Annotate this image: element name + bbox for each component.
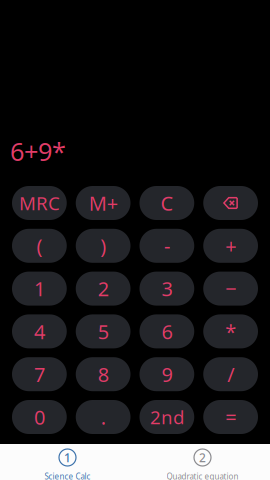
staticText: - xyxy=(164,232,170,259)
staticText: M+ xyxy=(89,190,118,216)
staticText: 1 xyxy=(34,275,45,302)
staticText: 2nd xyxy=(150,405,184,429)
staticText: 2 xyxy=(199,449,206,465)
button[interactable]: ) xyxy=(76,229,131,263)
staticText: 5 xyxy=(98,318,109,345)
button[interactable]: 6 xyxy=(139,314,194,348)
button[interactable]: 1 xyxy=(12,272,67,306)
staticText: 6+9* xyxy=(10,134,66,168)
button[interactable]: 5 xyxy=(76,314,131,348)
staticText: = xyxy=(225,404,236,430)
staticText: − xyxy=(225,275,236,302)
staticText: ( xyxy=(36,232,42,259)
button[interactable]: MRC xyxy=(12,186,67,220)
button[interactable]: * xyxy=(203,314,258,348)
button[interactable]: / xyxy=(203,357,258,391)
button[interactable]: 0 xyxy=(12,400,67,434)
staticText: 7 xyxy=(34,361,45,387)
staticText: . xyxy=(101,404,106,430)
button[interactable]: ( xyxy=(12,229,67,263)
staticText: Science Calc xyxy=(44,471,90,480)
button[interactable]: 2 xyxy=(76,272,131,306)
staticText: / xyxy=(227,361,234,387)
staticText: MRC xyxy=(19,191,60,215)
button[interactable]: 4 xyxy=(12,314,67,348)
button[interactable]: = xyxy=(203,400,258,434)
button[interactable]: 7 xyxy=(12,357,67,391)
button[interactable]: Delete xyxy=(203,186,258,220)
staticText: 0 xyxy=(34,404,45,430)
staticText: ) xyxy=(100,232,106,259)
staticText: + xyxy=(225,232,236,259)
button[interactable]: 8 xyxy=(76,357,131,391)
staticText: 8 xyxy=(98,361,109,387)
staticText: Quadratic equation xyxy=(166,471,238,480)
staticText: C xyxy=(160,190,173,216)
button[interactable]: + xyxy=(203,229,258,263)
button[interactable]: 1 xyxy=(0,444,135,480)
staticText: 6 xyxy=(161,318,172,345)
staticText: * xyxy=(225,318,236,345)
button[interactable]: C xyxy=(139,186,194,220)
button[interactable]: 2 xyxy=(135,444,270,480)
staticText: 4 xyxy=(34,318,45,345)
button[interactable]: 2nd xyxy=(139,400,194,434)
button[interactable]: 9 xyxy=(139,357,194,391)
staticText: 9 xyxy=(161,361,172,387)
staticText: 2 xyxy=(98,275,109,302)
button[interactable]: M+ xyxy=(76,186,131,220)
staticText: 3 xyxy=(161,275,172,302)
button[interactable]: 3 xyxy=(139,272,194,306)
button[interactable]: . xyxy=(76,400,131,434)
button[interactable]: - xyxy=(139,229,194,263)
button[interactable]: − xyxy=(203,272,258,306)
staticText: 1 xyxy=(64,449,71,465)
